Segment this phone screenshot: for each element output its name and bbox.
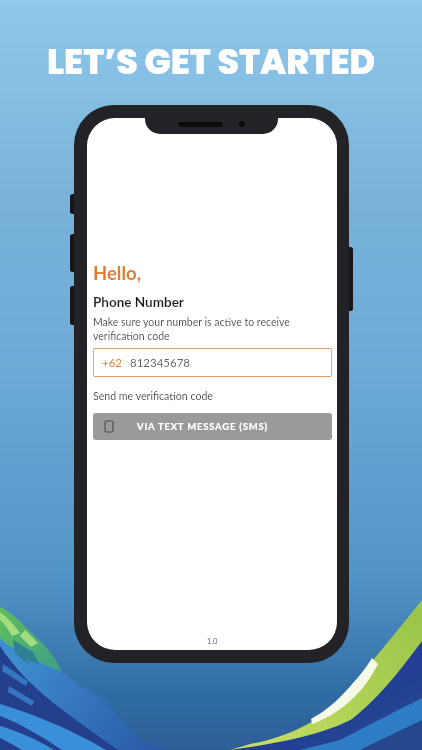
staticText: 1.0	[207, 637, 218, 646]
staticText: +62	[102, 356, 123, 370]
staticText: 812345678	[130, 356, 191, 370]
button[interactable]: +62	[93, 348, 332, 377]
staticText: Make sure your number is active to recei…	[93, 316, 293, 342]
staticText: Send me verification code	[93, 390, 213, 403]
staticText: Phone Number	[93, 294, 184, 310]
staticText: Hello,	[93, 262, 141, 284]
staticText: LET’S GET STARTED	[47, 37, 376, 86]
staticText: VIA TEXT MESSAGE (SMS)	[137, 421, 268, 432]
button[interactable]: VIA TEXT MESSAGE (SMS)	[93, 413, 332, 440]
